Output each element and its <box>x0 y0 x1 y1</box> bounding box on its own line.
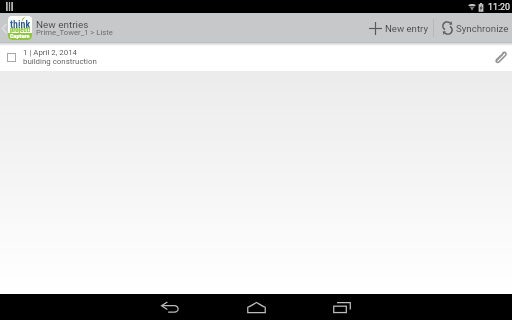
button[interactable]: Home <box>227 294 285 320</box>
staticText: 11:20 <box>488 2 510 12</box>
button[interactable]: Recents <box>313 294 371 320</box>
staticText: think <box>10 19 31 31</box>
button[interactable]: Synchronize <box>434 13 512 43</box>
button[interactable]: Attachment <box>489 46 511 68</box>
button[interactable]: think <box>0 13 116 43</box>
staticText: 1 | April 2, 2014 <box>23 48 78 57</box>
staticText: project! <box>10 26 31 34</box>
button[interactable]: New entry <box>369 13 433 43</box>
staticText: New entries <box>36 19 89 31</box>
staticText: building construction <box>23 57 97 66</box>
staticText: Capture <box>10 32 30 39</box>
button[interactable]: Back <box>141 294 199 320</box>
staticText: Prime_Tower_1 > Liste <box>36 28 113 37</box>
button[interactable]: Select entry <box>7 53 16 62</box>
staticText: New entry <box>385 23 428 34</box>
staticText: Synchronize <box>456 23 509 34</box>
button[interactable]: Select entry <box>0 43 512 71</box>
